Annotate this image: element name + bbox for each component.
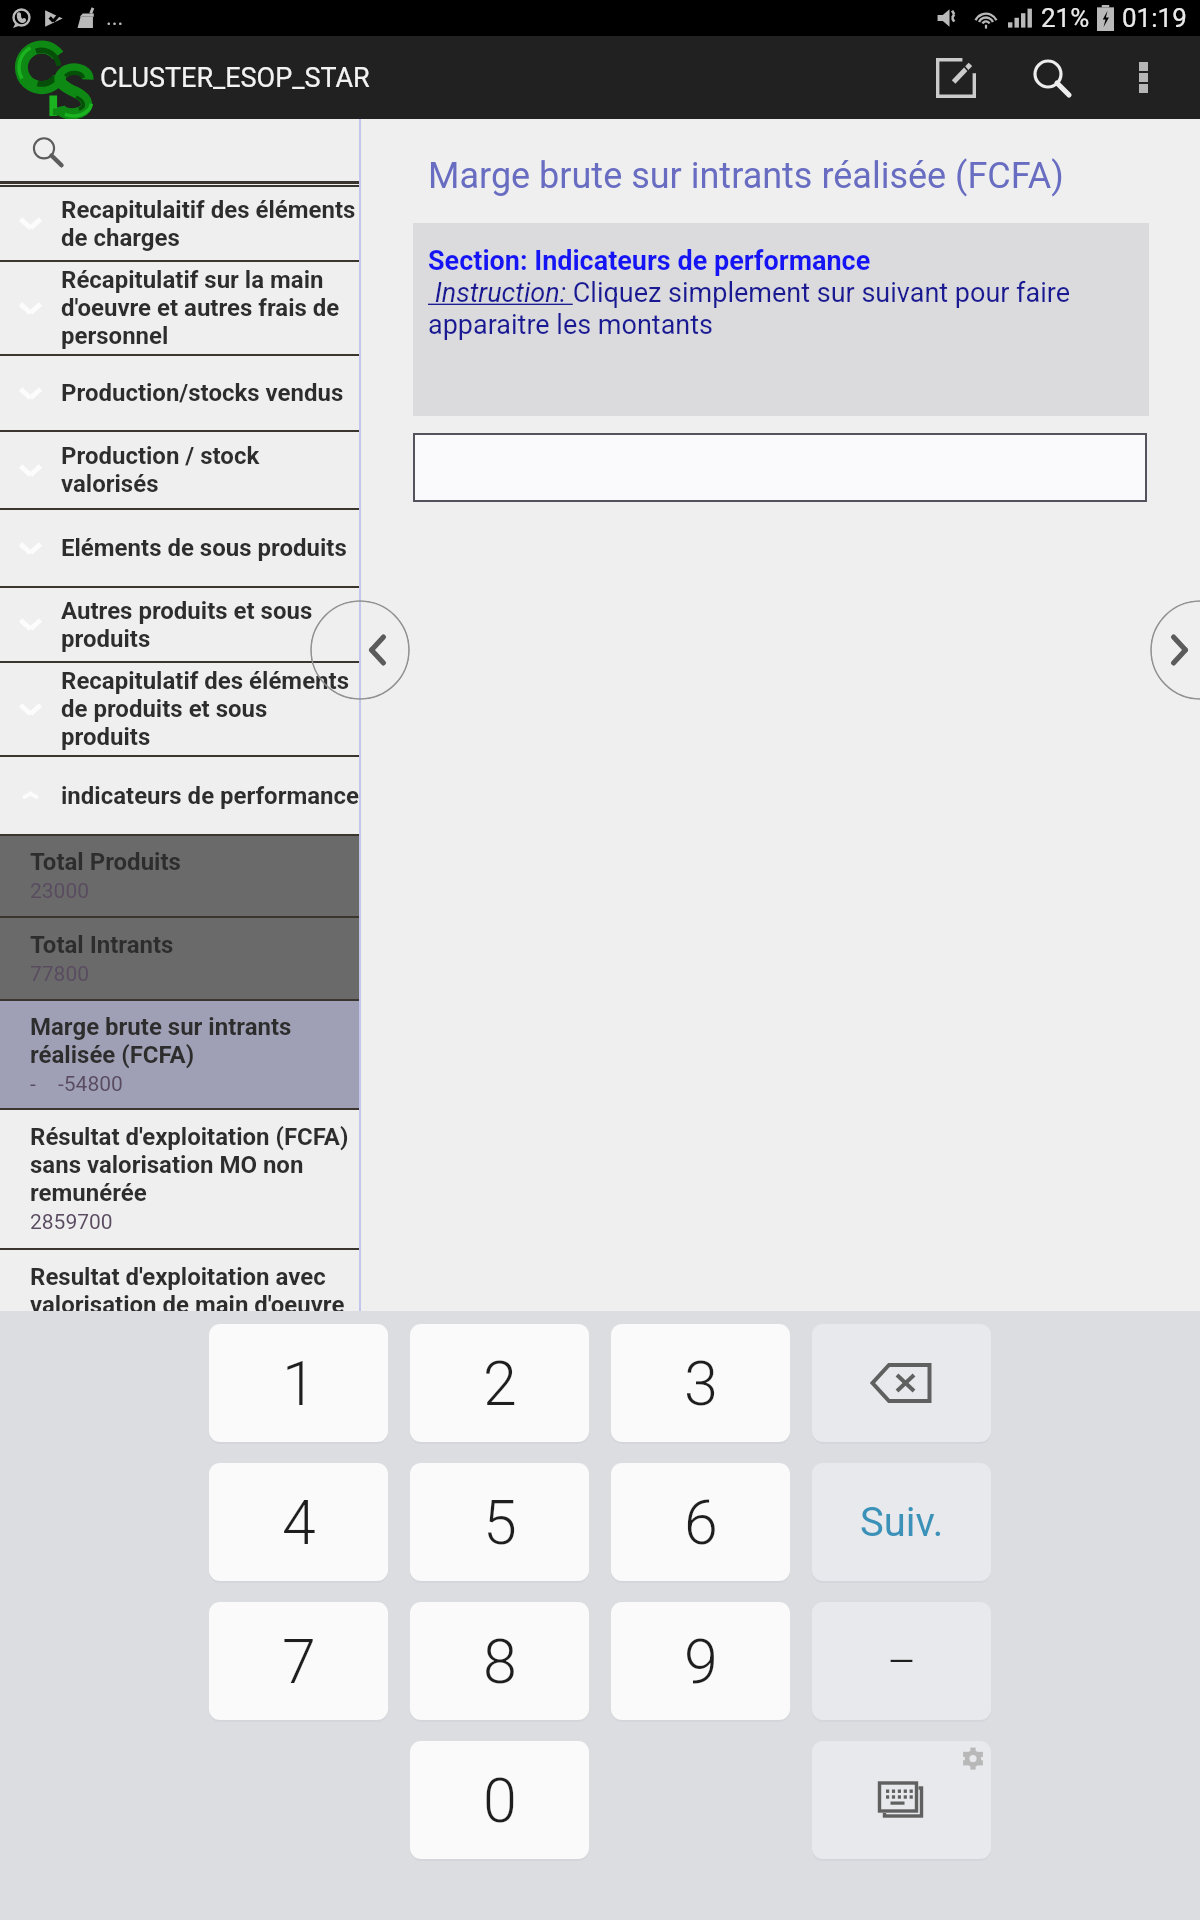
button[interactable]: 9 [611, 1602, 790, 1720]
button[interactable]: Previous [310, 600, 410, 700]
staticText: Production / stock valorisés [61, 442, 359, 498]
button[interactable] [413, 433, 1147, 502]
button[interactable]: indicateurs de performance [0, 757, 359, 834]
staticText: - [30, 1072, 36, 1097]
button[interactable]: Resultat d'exploitation avec valorisatio… [0, 1250, 359, 1311]
button[interactable]: More options [1100, 36, 1186, 119]
staticText: 2 [483, 1348, 517, 1419]
staticText: Total Produits [30, 848, 352, 876]
staticText: 1 [282, 1348, 316, 1419]
staticText: Production/stocks vendus [61, 379, 359, 407]
button[interactable]: – [812, 1602, 991, 1720]
staticText: 6 [684, 1487, 718, 1558]
staticText: Recapitulaitif des éléments de charges [61, 196, 359, 252]
staticText: Section: Indicateurs de performance Inst… [428, 245, 1128, 341]
button[interactable]: 8 [410, 1602, 589, 1720]
staticText: 7 [282, 1626, 316, 1697]
staticText: Autres produits et sous produits [61, 597, 359, 653]
staticText: Recapitulatif des éléments de produits e… [61, 667, 359, 751]
button[interactable]: Production / stock valorisés [0, 432, 359, 508]
button[interactable]: 5 [410, 1463, 589, 1581]
staticText: 3 [684, 1348, 718, 1419]
button[interactable]: 0 [410, 1741, 589, 1859]
staticText: Récapitulatif sur la main d'oeuvre et au… [61, 266, 359, 350]
button[interactable]: 2 [410, 1324, 589, 1442]
staticText: ... [106, 5, 124, 31]
staticText: Marge brute sur intrants réalisée (FCFA) [30, 1013, 352, 1069]
button[interactable]: Compose [908, 36, 1004, 119]
staticText: 23000 [30, 879, 90, 904]
button[interactable]: Switch keyboard [812, 1741, 991, 1859]
staticText: 5 [483, 1487, 517, 1558]
button[interactable]: 6 [611, 1463, 790, 1581]
button[interactable]: Next [1150, 600, 1200, 700]
staticText: Eléments de sous produits [61, 534, 359, 562]
staticText: 8 [483, 1626, 517, 1697]
button[interactable]: Production/stocks vendus [0, 356, 359, 430]
button[interactable]: Backspace [812, 1324, 991, 1442]
button[interactable]: 3 [611, 1324, 790, 1442]
button[interactable]: Eléments de sous produits [0, 510, 359, 586]
button[interactable]: Marge brute sur intrants réalisée (FCFA) [0, 1001, 359, 1108]
staticText: Marge brute sur intrants réalisée (FCFA) [428, 155, 1064, 197]
button[interactable]: Recapitulatif des éléments de produits e… [0, 663, 359, 755]
button[interactable]: Search [1004, 36, 1100, 119]
button[interactable]: Récapitulatif sur la main d'oeuvre et au… [0, 262, 359, 354]
button[interactable]: Total Intrants [0, 918, 359, 999]
staticText: Total Intrants [30, 931, 352, 959]
staticText: 01:19 [1122, 3, 1187, 33]
staticText: Résultat d'exploitation (FCFA) sans valo… [30, 1123, 352, 1207]
staticText: CLUSTER_ESOP_STAR [100, 62, 370, 94]
staticText: indicateurs de performance [61, 782, 359, 810]
staticText: Suiv. [860, 1499, 944, 1546]
staticText: 9 [684, 1626, 718, 1697]
staticText: 0 [483, 1765, 517, 1836]
button[interactable]: 1 [209, 1324, 388, 1442]
button[interactable]: Autres produits et sous produits [0, 588, 359, 661]
button[interactable]: Résultat d'exploitation (FCFA) sans valo… [0, 1110, 359, 1248]
button[interactable]: Recapitulaitif des éléments de charges [0, 187, 359, 260]
staticText: 77800 [30, 962, 90, 987]
button[interactable]: Suiv. [812, 1463, 991, 1581]
staticText: 4 [282, 1487, 316, 1558]
staticText: – [887, 1635, 917, 1688]
button[interactable]: 7 [209, 1602, 388, 1720]
staticText: -54800 [58, 1072, 123, 1097]
button[interactable]: 4 [209, 1463, 388, 1581]
staticText: 2859700 [30, 1210, 113, 1235]
staticText: 21% [1041, 3, 1090, 33]
button[interactable]: Total Produits [0, 836, 359, 916]
staticText: Resultat d'exploitation avec valorisatio… [30, 1263, 352, 1311]
